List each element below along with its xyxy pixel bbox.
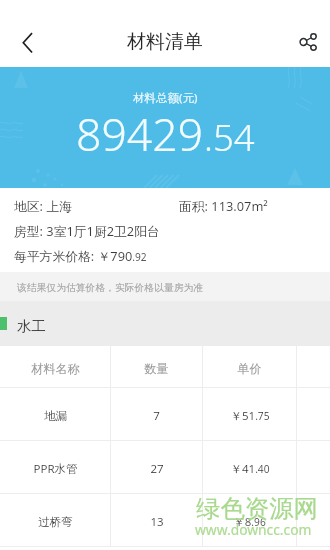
staticText: 材料清单 xyxy=(127,30,203,54)
button[interactable]: Share xyxy=(290,25,326,61)
staticText: 单价 xyxy=(237,361,262,376)
staticText: ￥41.40 xyxy=(230,461,270,477)
staticText: 13 xyxy=(150,514,164,530)
staticText: 地漏 xyxy=(44,409,67,423)
staticText: 绿色资源网 xyxy=(196,494,318,525)
staticText: 房型: 3室1厅1厨2卫2阳台 xyxy=(14,222,160,239)
staticText: 27 xyxy=(150,461,164,477)
staticText: .54 xyxy=(204,112,255,162)
button[interactable]: 过桥弯 xyxy=(0,494,330,546)
staticText: 水工 xyxy=(17,317,46,335)
button[interactable]: PPR水管 xyxy=(0,441,330,493)
button[interactable]: Back xyxy=(9,25,45,61)
staticText: 每平方米价格: ￥790.92 xyxy=(14,247,147,264)
staticText: www.downcc.com xyxy=(195,520,312,539)
staticText: 地区: 上海 xyxy=(14,197,72,214)
staticText: 89429 xyxy=(76,103,204,164)
staticText: 面积: 113.07m² xyxy=(179,197,268,214)
staticText: 材料名称 xyxy=(31,361,80,376)
staticText: 数量 xyxy=(144,361,169,376)
staticText: 该结果仅为估算价格，实际价格以量房为准 xyxy=(17,282,204,294)
staticText: 材料总额(元) xyxy=(133,90,198,106)
staticText: PPR水管 xyxy=(33,461,78,477)
staticText: 7 xyxy=(153,408,160,424)
button[interactable]: 地漏 xyxy=(0,388,330,440)
staticText: ￥8.96 xyxy=(233,514,266,530)
staticText: ￥51.75 xyxy=(230,408,270,424)
staticText: 过桥弯 xyxy=(38,515,73,529)
